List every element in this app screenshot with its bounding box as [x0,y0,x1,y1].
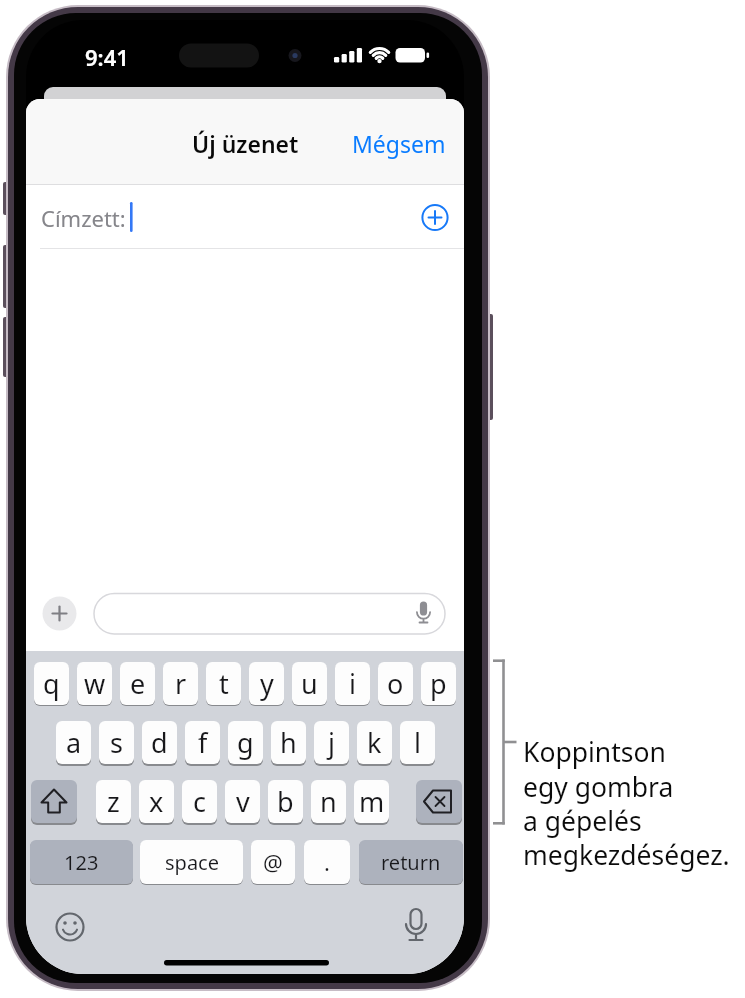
button[interactable]: b [268,780,303,823]
staticText: t [219,665,229,702]
staticText: q [43,665,60,702]
button[interactable]: t [206,662,241,705]
button[interactable] [422,204,449,231]
button[interactable]: p [421,662,456,705]
button[interactable]: s [99,721,134,764]
staticText: Koppintson egy gombra a gépelés megkezdé… [523,734,730,872]
staticText: f [198,724,208,761]
button[interactable]: w [77,662,112,705]
button[interactable]: j [314,721,349,764]
staticText: j [328,724,335,761]
button[interactable] [31,780,77,823]
staticText: e [130,665,146,702]
staticText: . [324,847,330,877]
button[interactable]: q [34,662,69,705]
staticText: l [414,724,421,761]
button[interactable] [42,596,77,631]
staticText: d [151,724,168,761]
staticText: o [387,665,404,702]
staticText: 9:41 [85,42,129,72]
staticText: y [260,665,274,702]
button[interactable]: 123 [30,840,133,884]
staticText: v [236,783,250,820]
staticText: p [430,665,447,702]
staticText: i [349,665,356,702]
button[interactable]: z [96,780,131,823]
staticText: n [320,783,337,820]
button[interactable]: . [304,840,350,884]
button[interactable]: Mégsem [246,127,446,159]
button[interactable]: u [292,662,327,705]
staticText: @ [263,847,283,877]
staticText: Mégsem [352,128,446,159]
button[interactable]: d [142,721,177,764]
staticText: space [165,849,219,876]
staticText: g [237,724,254,761]
button[interactable]: e [120,662,155,705]
staticText: Új üzenet [192,128,299,159]
button[interactable]: y [249,662,284,705]
staticText: b [277,783,294,820]
button[interactable]: f [185,721,220,764]
button[interactable]: h [271,721,306,764]
staticText: m [359,783,385,820]
staticText: w [84,665,106,702]
button[interactable]: @ [251,840,295,884]
button[interactable]: m [354,780,389,823]
button[interactable]: v [225,780,260,823]
button[interactable]: n [311,780,346,823]
staticText: x [149,783,164,820]
staticText: 123 [64,849,99,876]
button[interactable]: o [378,662,413,705]
button[interactable] [26,185,464,248]
button[interactable]: return [359,840,463,884]
staticText: z [107,783,120,820]
staticText: c [193,783,206,820]
staticText: Címzett: [41,203,126,233]
staticText: k [367,724,382,761]
button[interactable]: a [56,721,91,764]
button[interactable] [94,593,445,634]
button[interactable] [416,780,462,823]
button[interactable]: g [228,721,263,764]
staticText: r [175,665,187,702]
button[interactable] [400,907,432,939]
staticText: h [280,724,297,761]
button[interactable]: k [357,721,392,764]
button[interactable]: x [139,780,174,823]
staticText: u [301,665,318,702]
button[interactable]: l [400,721,435,764]
staticText: s [110,724,123,761]
staticText: return [381,849,441,876]
button[interactable]: r [163,662,198,705]
button[interactable]: space [140,840,243,884]
button[interactable]: i [335,662,370,705]
button[interactable] [54,911,86,943]
button[interactable]: c [182,780,217,823]
staticText: a [66,724,82,761]
